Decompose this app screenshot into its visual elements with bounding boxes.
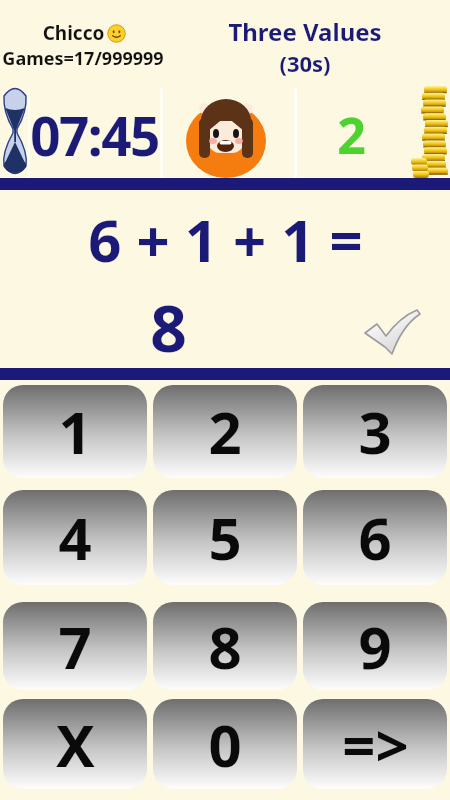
button[interactable]: => — [303, 699, 447, 789]
staticText: 4 — [58, 498, 92, 577]
staticText: 2 — [337, 101, 366, 169]
staticText: 0 — [208, 705, 242, 784]
button[interactable]: 5 — [153, 490, 297, 585]
button[interactable]: X — [3, 699, 147, 789]
staticText: 8 — [150, 284, 187, 366]
staticText: 5 — [208, 498, 242, 577]
staticText: 3 — [358, 392, 392, 471]
button[interactable]: 9 — [303, 602, 447, 690]
button[interactable]: 1 — [3, 385, 147, 478]
button[interactable]: 8 — [153, 602, 297, 690]
button[interactable]: 3 — [303, 385, 447, 478]
staticText: Chicco — [40, 20, 107, 46]
staticText: 8 — [208, 607, 242, 686]
staticText: 9 — [358, 607, 392, 686]
staticText: Three Values — [228, 15, 382, 48]
staticText: 1 — [58, 392, 92, 471]
staticText: 07:45 — [30, 99, 159, 171]
staticText: 7 — [58, 607, 92, 686]
staticText: 2 — [208, 392, 242, 471]
staticText: Games=17/999999 — [2, 46, 164, 71]
staticText: 6 + 1 + 1 = — [88, 200, 363, 278]
staticText: X — [56, 705, 95, 784]
button[interactable]: 6 — [303, 490, 447, 585]
staticText: (30s) — [279, 48, 331, 78]
staticText: 6 — [358, 498, 392, 577]
button[interactable]: 7 — [3, 602, 147, 690]
staticText: => — [342, 705, 409, 784]
button[interactable]: 4 — [3, 490, 147, 585]
button[interactable]: 2 — [153, 385, 297, 478]
button[interactable]: 0 — [153, 699, 297, 789]
